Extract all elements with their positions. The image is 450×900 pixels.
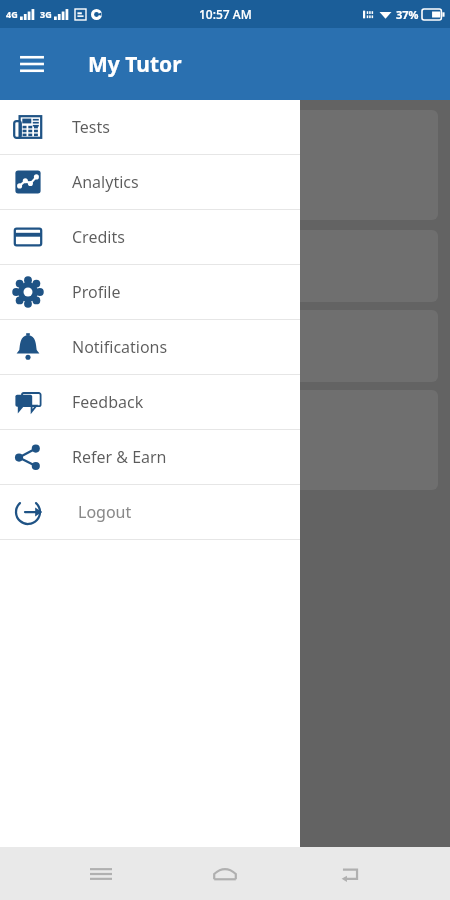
staticText: 4G: [6, 8, 18, 20]
staticText: Analytics: [26, 335, 97, 358]
staticText: Analytics: [72, 171, 139, 193]
button[interactable]: Home: [201, 850, 249, 898]
staticText: 10:57 AM: [199, 6, 252, 22]
button[interactable]: Credits: [0, 210, 300, 264]
staticText: Notifications: [72, 336, 168, 358]
button[interactable]: Notifications: [0, 320, 300, 374]
button[interactable]: Analytics: [12, 310, 438, 382]
button[interactable]: Recents: [77, 850, 125, 898]
staticText: Tests: [72, 116, 110, 138]
staticText: Logout: [78, 501, 132, 523]
staticText: Credits: [72, 226, 125, 248]
staticText: My Tutor: [88, 50, 182, 79]
button[interactable]: Logout: [0, 485, 300, 539]
button[interactable]: Analytics: [0, 155, 300, 209]
staticText: 3G: [40, 8, 52, 20]
button[interactable]: Tests: [0, 100, 300, 154]
button[interactable]: Feedback: [0, 375, 300, 429]
button[interactable]: Welcome to My Tutor: [12, 110, 438, 220]
button[interactable]: Open navigation drawer: [8, 40, 56, 88]
button[interactable]: [12, 390, 438, 490]
button[interactable]: Refer & Earn: [0, 430, 300, 484]
staticText: 37%: [396, 7, 419, 22]
staticText: Take Test: [26, 255, 99, 278]
button[interactable]: Back: [326, 850, 374, 898]
staticText: Feedback: [72, 391, 144, 413]
staticText: Prepare for entrance: [26, 157, 221, 184]
button[interactable]: Profile: [0, 265, 300, 319]
button[interactable]: Take Test: [12, 230, 438, 302]
staticText: Refer & Earn: [72, 446, 167, 468]
staticText: Welcome to My Tutor: [26, 126, 166, 145]
staticText: Profile: [72, 281, 121, 303]
